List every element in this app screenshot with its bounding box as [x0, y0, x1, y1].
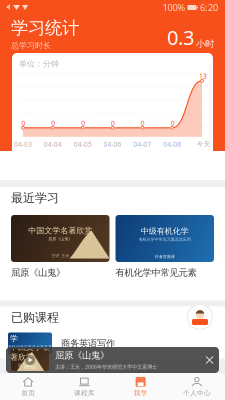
staticText: 屈原《山鬼》: [48, 236, 72, 241]
staticText: 屈原《山鬼》: [55, 350, 109, 361]
staticText: 04-08: [163, 140, 181, 149]
staticText: 作者直播课: [20, 356, 40, 361]
staticText: 04-06: [103, 140, 121, 149]
staticText: 小时: [196, 38, 214, 50]
staticText: 主讲 王永: [21, 371, 39, 376]
staticText: 课程库: [74, 389, 95, 397]
staticText: 0: [111, 119, 115, 128]
staticText: 主讲：王永，2006年华东师范大学中文系博士: [55, 363, 157, 370]
staticText: 中国文学名著欣赏: [10, 342, 50, 362]
staticText: 0.3: [167, 24, 194, 51]
staticText: 首页: [21, 389, 35, 397]
staticText: 个人中心: [183, 389, 211, 397]
staticText: 中国文学名著欣赏: [28, 226, 92, 235]
staticText: 0: [171, 119, 175, 128]
button[interactable]: 课程库: [56, 373, 112, 400]
staticText: 有机化学中常见元素: [115, 267, 196, 278]
staticText: 09:02: [23, 363, 36, 370]
button[interactable]: 中国文学名著欣赏: [0, 347, 225, 373]
staticText: 总学习时长: [11, 41, 51, 50]
button[interactable]: 首页: [0, 373, 56, 400]
button[interactable]: 中级有机化学: [115, 215, 214, 278]
staticText: 0: [21, 119, 25, 128]
button[interactable]: 客服: [187, 304, 213, 330]
button[interactable]: 我学: [112, 373, 169, 400]
staticText: 0: [51, 119, 55, 128]
staticText: 商务英语写作: [61, 338, 115, 349]
staticText: 0: [81, 119, 85, 128]
staticText: 13: [199, 72, 207, 81]
staticText: 04-04: [44, 140, 62, 149]
staticText: 中级有机化学: [141, 226, 189, 236]
staticText: 屈原《山鬼》: [18, 363, 42, 368]
staticText: 我学: [134, 389, 148, 397]
button[interactable]: 个人中心: [169, 373, 225, 400]
staticText: 主讲 王永: [51, 253, 69, 258]
staticText: 04-03: [14, 140, 32, 149]
staticText: 单位：分钟: [19, 59, 59, 69]
staticText: 100%: [162, 1, 185, 14]
staticText: 6:20: [200, 1, 218, 14]
staticText: 今天: [196, 140, 210, 148]
staticText: 04-07: [133, 140, 151, 149]
staticText: 已购课程: [11, 310, 59, 325]
button[interactable]: 中国文学名著欣赏: [11, 215, 109, 278]
staticText: 有机化学中常见元素及其应用: [139, 237, 191, 242]
staticText: 有机化学中常见元素及其应用: [8, 344, 52, 354]
staticText: 04-05: [74, 140, 92, 149]
staticText: 屈原《山鬼》: [11, 267, 65, 278]
staticText: 中级有机化学: [10, 324, 50, 343]
staticText: 最近学习: [11, 191, 59, 205]
staticText: 学习统计: [11, 17, 79, 39]
staticText: 0: [141, 119, 145, 128]
button[interactable]: 中级有机化学: [0, 328, 225, 358]
staticText: 作者直播课: [155, 254, 175, 259]
